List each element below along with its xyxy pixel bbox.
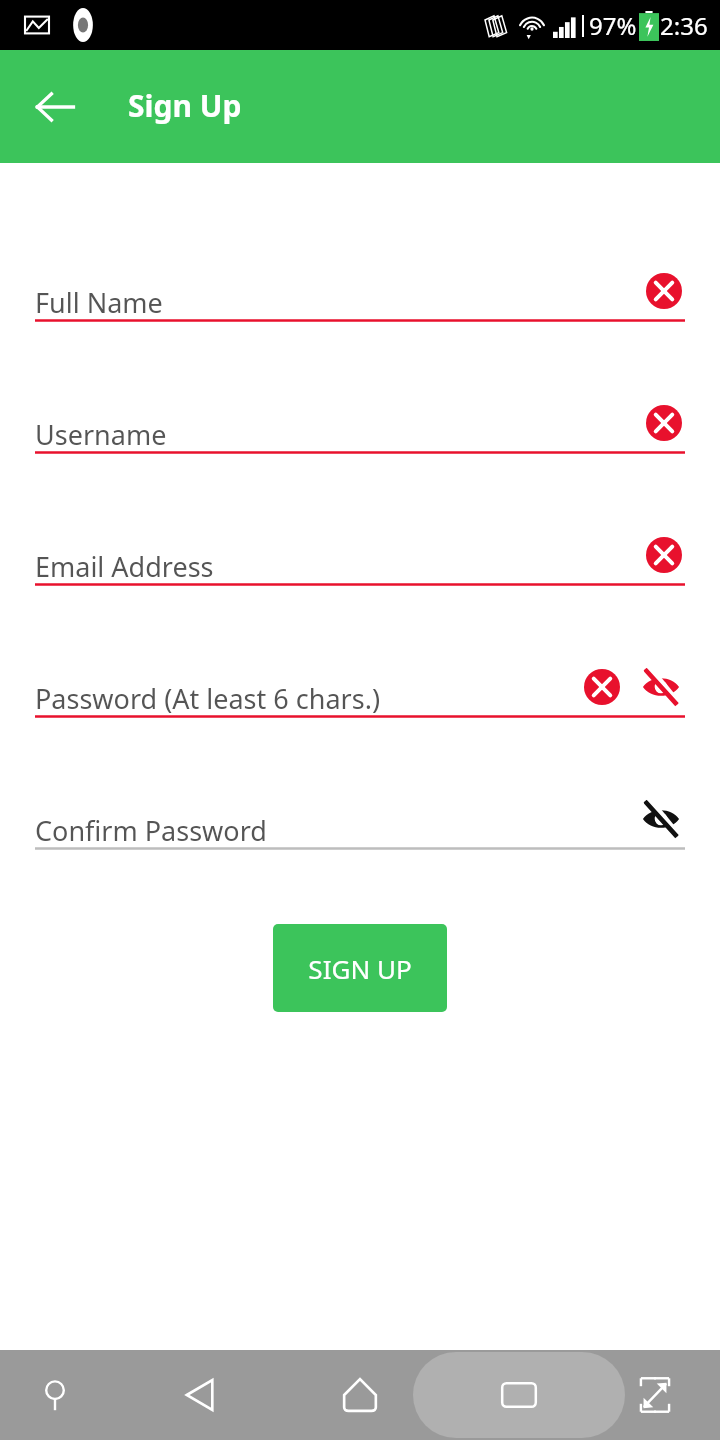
button[interactable]: Assistant	[15, 1355, 95, 1435]
button[interactable]: Error	[643, 534, 685, 576]
button[interactable]: Error	[643, 402, 685, 444]
button[interactable]: Recents	[479, 1355, 559, 1435]
button[interactable]: Password (At least 6 chars.)	[35, 666, 685, 718]
staticText: Username	[35, 416, 167, 453]
button[interactable]: Toggle password visibility	[637, 795, 685, 843]
button[interactable]: Confirm Password	[35, 798, 685, 850]
button[interactable]: Back	[160, 1355, 240, 1435]
staticText: Full Name	[35, 284, 163, 321]
button[interactable]: Email Address	[35, 534, 685, 586]
button[interactable]: Error	[643, 270, 685, 312]
button[interactable]: Back	[20, 72, 90, 142]
button[interactable]: Toggle password visibility	[637, 663, 685, 711]
staticText: Email Address	[35, 548, 214, 585]
staticText: Password (At least 6 chars.)	[35, 680, 380, 717]
button[interactable]: Username	[35, 402, 685, 454]
staticText: Confirm Password	[35, 812, 267, 849]
staticText: SIGN UP	[308, 951, 412, 986]
button[interactable]: Error	[581, 666, 623, 708]
staticText: 2:36	[660, 9, 708, 42]
button[interactable]: Home	[320, 1355, 400, 1435]
staticText: 97%	[589, 9, 637, 42]
button[interactable]: Full screen	[615, 1355, 695, 1435]
button[interactable]: SIGN UP	[273, 924, 447, 1012]
staticText: Sign Up	[128, 85, 242, 126]
button[interactable]: Full Name	[35, 270, 685, 322]
